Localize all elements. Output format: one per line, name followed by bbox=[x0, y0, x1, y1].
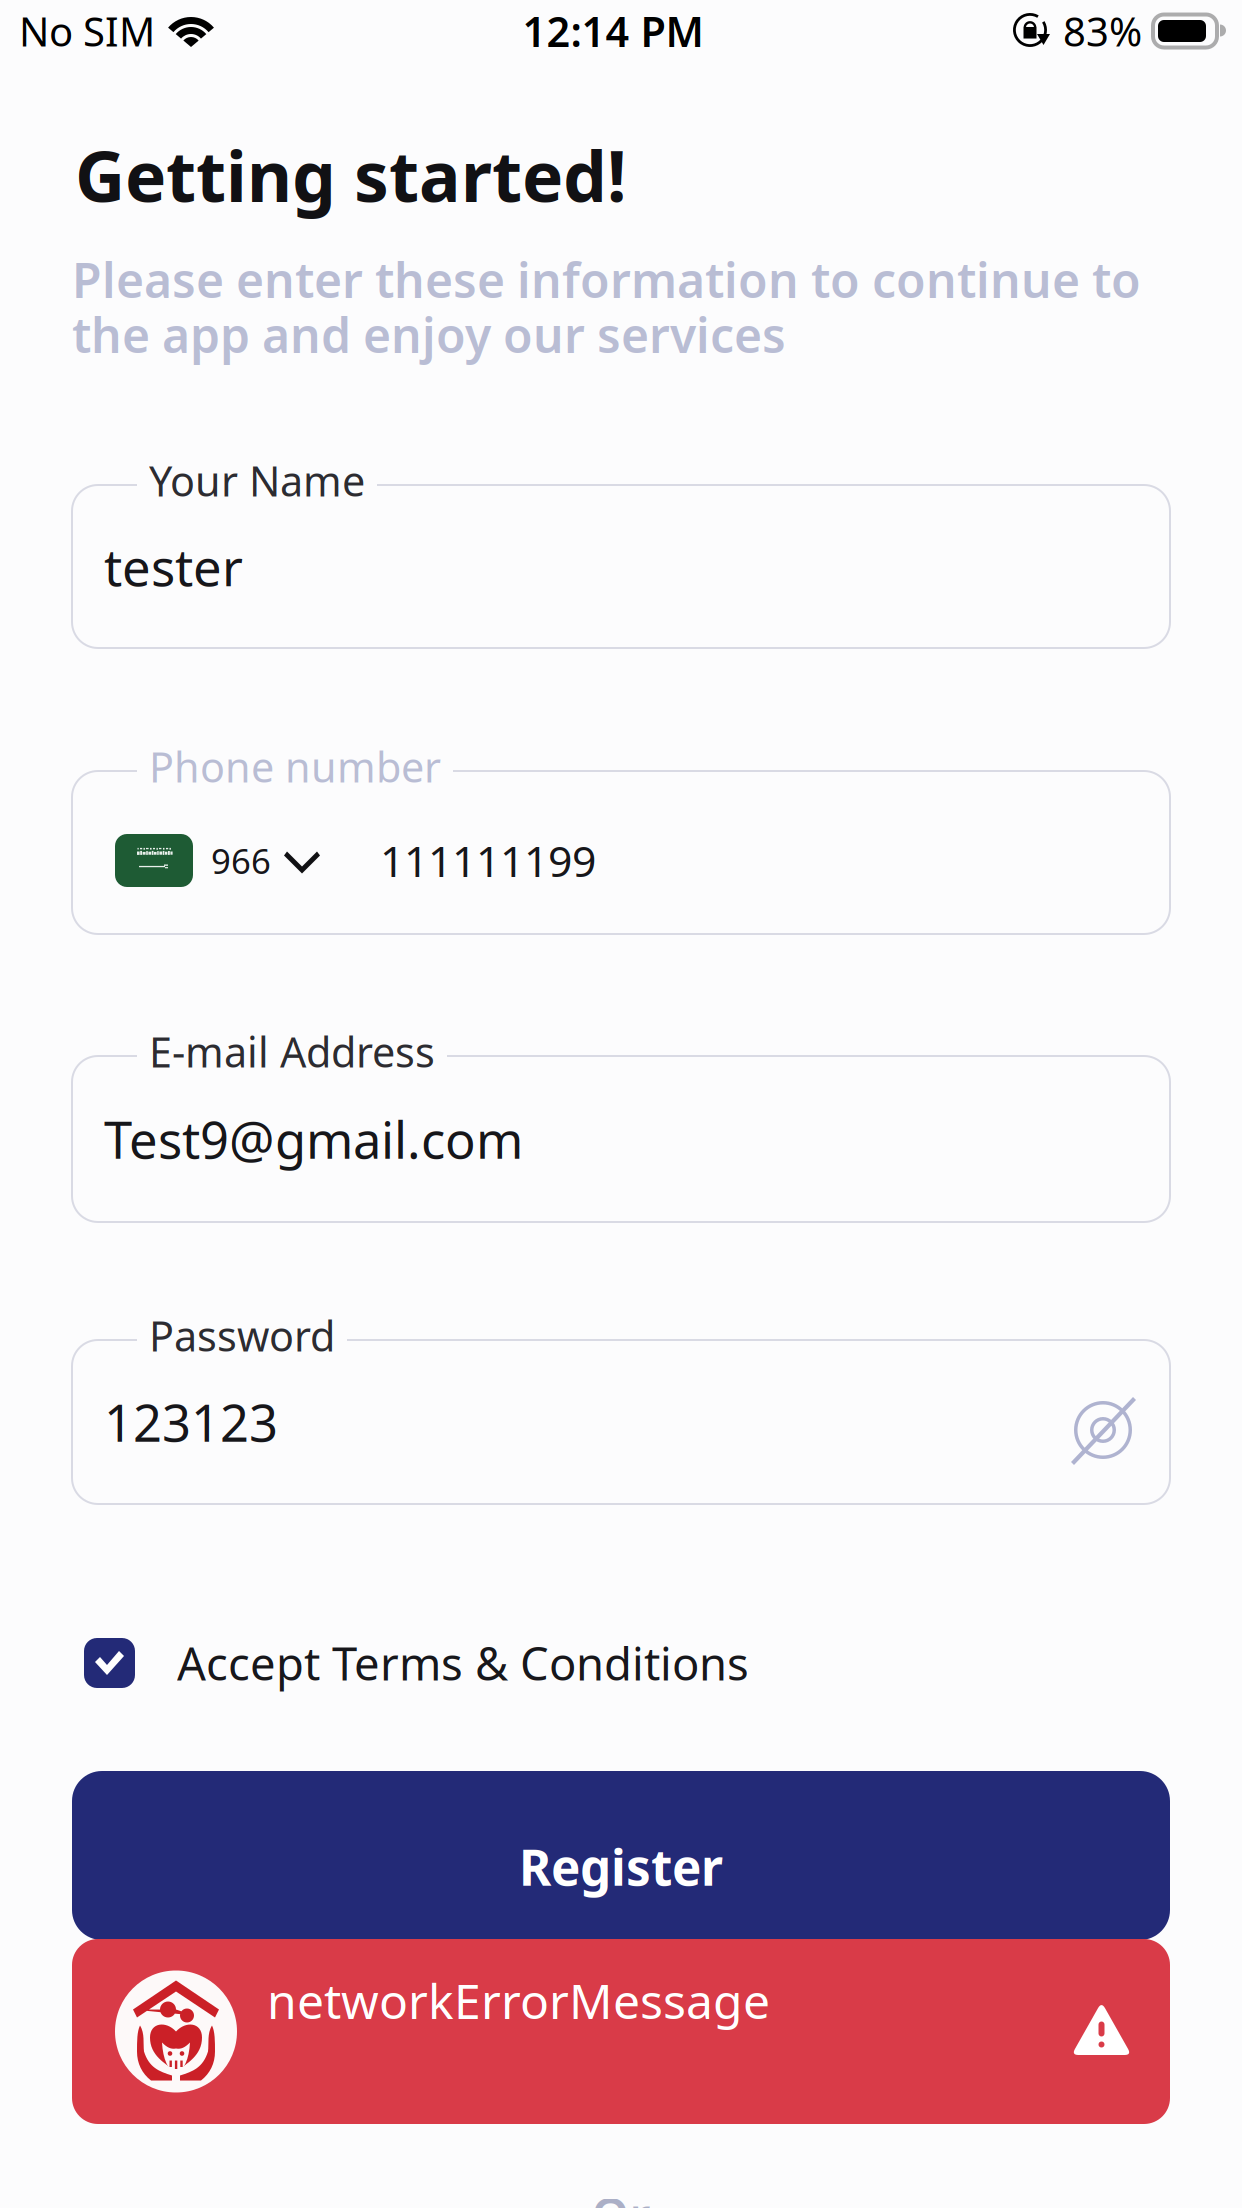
staticText: No SIM bbox=[19, 4, 155, 57]
staticText: Password bbox=[149, 1308, 335, 1363]
staticText: Getting started! bbox=[75, 129, 627, 221]
button[interactable]: Register bbox=[72, 1771, 1170, 1940]
staticText: Please enter these information to contin… bbox=[72, 248, 1141, 311]
staticText: Test9@gmail.com bbox=[104, 1105, 523, 1173]
staticText: networkErrorMessage bbox=[267, 1969, 770, 2032]
staticText: 111111199 bbox=[380, 832, 596, 889]
staticText: Your Name bbox=[149, 453, 365, 508]
staticText: E-mail Address bbox=[149, 1024, 435, 1079]
staticText: Register bbox=[519, 1834, 723, 1899]
staticText: Phone number bbox=[149, 739, 441, 794]
staticText: 123123 bbox=[104, 1388, 278, 1456]
button[interactable]: Accept Terms & Conditions bbox=[84, 1638, 749, 1688]
staticText: 12:14 PM bbox=[522, 4, 703, 58]
staticText: 83% bbox=[1063, 4, 1142, 57]
staticText: the app and enjoy our services bbox=[72, 303, 786, 366]
staticText: 966 bbox=[211, 837, 271, 883]
staticText: Accept Terms & Conditions bbox=[177, 1633, 749, 1693]
staticText: tester bbox=[104, 533, 243, 600]
staticText: Or bbox=[591, 2183, 650, 2208]
